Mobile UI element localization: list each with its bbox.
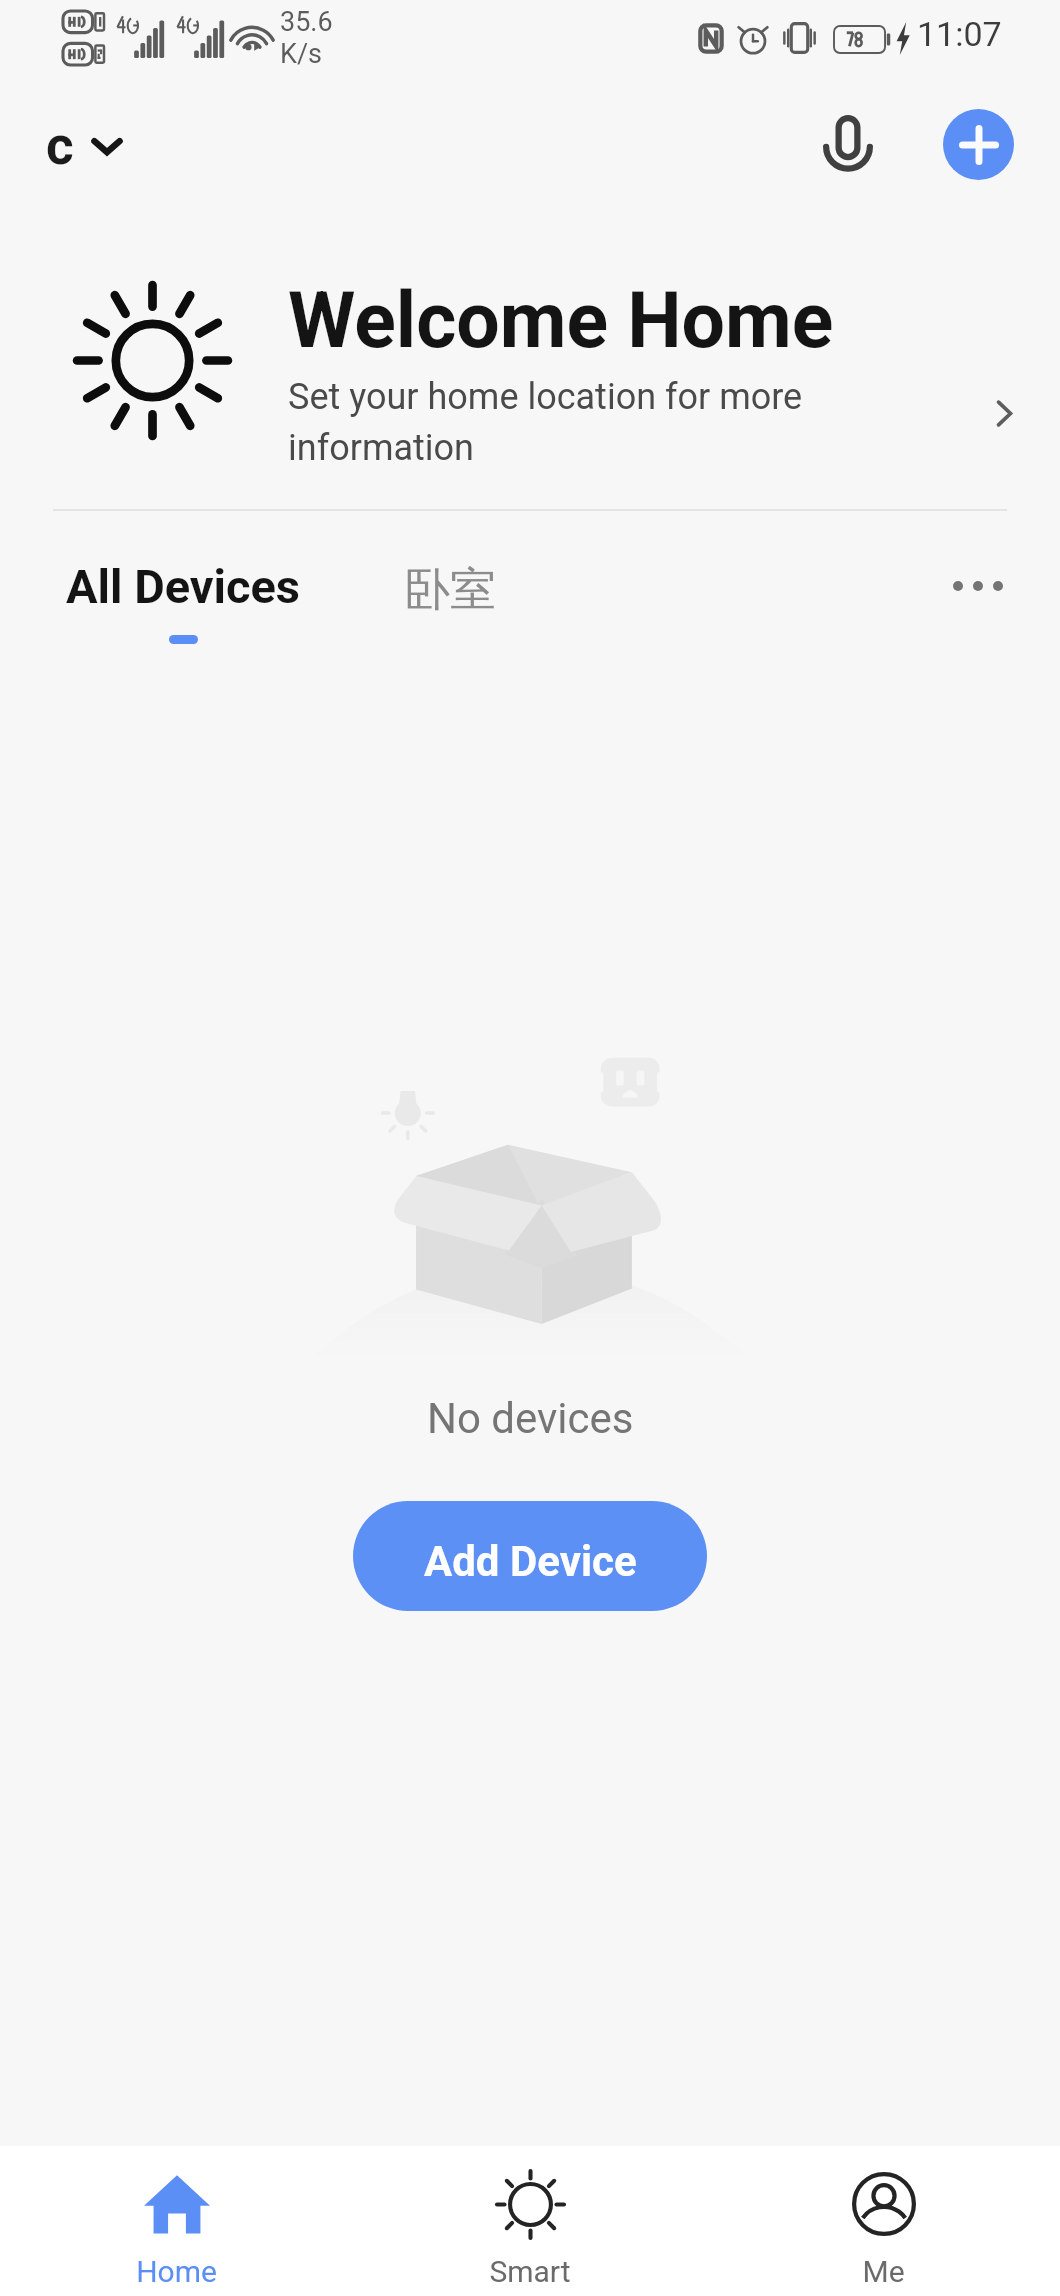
button[interactable]: Add device: [934, 100, 1022, 188]
button[interactable]: c: [30, 101, 138, 191]
staticText: All Devices: [66, 559, 301, 614]
staticText: Add Device: [424, 1537, 637, 1586]
button[interactable]: Home: [0, 2146, 353, 2296]
staticText: 11:07: [917, 14, 1002, 54]
button[interactable]: Voice assistant: [804, 100, 892, 188]
button[interactable]: Smart: [353, 2146, 706, 2296]
button[interactable]: 卧室: [382, 543, 518, 637]
staticText: Smart: [489, 2254, 571, 2289]
button[interactable]: Set home location: [966, 375, 1042, 451]
button[interactable]: All Devices: [38, 541, 329, 662]
staticText: Me: [862, 2254, 905, 2289]
staticText: Set your home location for more informat…: [288, 376, 848, 468]
staticText: No devices: [427, 1394, 634, 1443]
button[interactable]: Me: [707, 2146, 1060, 2296]
staticText: 卧室: [404, 561, 496, 619]
staticText: K/s: [280, 38, 323, 70]
staticText: Home: [136, 2254, 217, 2289]
button[interactable]: Add Device: [353, 1501, 707, 1611]
staticText: Welcome Home: [288, 276, 834, 366]
staticText: c: [46, 115, 74, 177]
staticText: 35.6: [280, 6, 333, 38]
button[interactable]: More options: [938, 546, 1018, 626]
